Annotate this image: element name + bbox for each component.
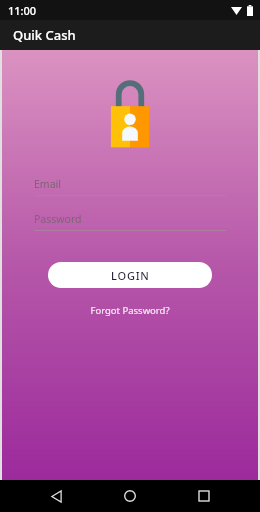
other: Account lock	[107, 80, 153, 148]
staticText: Email	[34, 177, 61, 191]
button[interactable]: Email	[34, 177, 226, 196]
button[interactable]: Forgot Password?	[82, 302, 178, 319]
button[interactable]: Recent apps	[186, 480, 222, 512]
button[interactable]: Home	[112, 480, 148, 512]
button[interactable]: LOGIN	[48, 262, 212, 288]
staticText: LOGIN	[111, 268, 150, 283]
staticText: Forgot Password?	[90, 304, 170, 317]
staticText: 11:00	[8, 3, 37, 18]
button[interactable]: Password	[34, 212, 226, 231]
staticText: Quik Cash	[13, 26, 76, 44]
staticText: Password	[34, 212, 82, 226]
button[interactable]: Back	[38, 480, 74, 512]
